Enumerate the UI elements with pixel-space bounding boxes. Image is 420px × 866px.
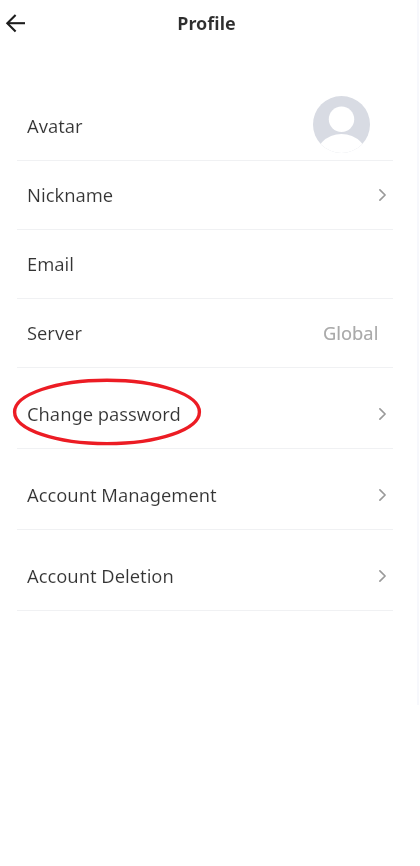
staticText: Change password xyxy=(27,401,181,426)
button[interactable]: Change password xyxy=(0,380,420,448)
staticText: Global xyxy=(323,320,379,345)
staticText: Account Deletion xyxy=(27,563,174,588)
staticText: Nickname xyxy=(27,182,114,207)
staticText: Server xyxy=(27,320,83,345)
staticText: Account Management xyxy=(27,482,217,507)
staticText: Profile xyxy=(177,11,236,36)
button[interactable]: Email xyxy=(0,230,420,298)
button[interactable]: Server xyxy=(0,299,420,367)
staticText: Avatar xyxy=(27,113,83,138)
button[interactable]: Account Deletion xyxy=(0,542,420,610)
button[interactable]: Nickname xyxy=(0,161,420,229)
staticText: Email xyxy=(27,251,74,276)
button[interactable]: Avatar xyxy=(0,92,420,160)
button[interactable]: Account Management xyxy=(0,461,420,529)
button[interactable]: Back xyxy=(1,1,32,46)
